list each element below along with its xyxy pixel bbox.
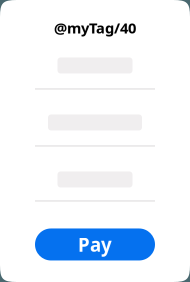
staticText: @myTag/40 bbox=[54, 18, 136, 37]
button[interactable]: Amount bbox=[0, 114, 190, 146]
button[interactable]: Recipient bbox=[0, 57, 190, 89]
staticText: Pay bbox=[78, 232, 112, 257]
button[interactable]: Note bbox=[0, 171, 190, 201]
button[interactable]: Pay bbox=[35, 228, 155, 260]
